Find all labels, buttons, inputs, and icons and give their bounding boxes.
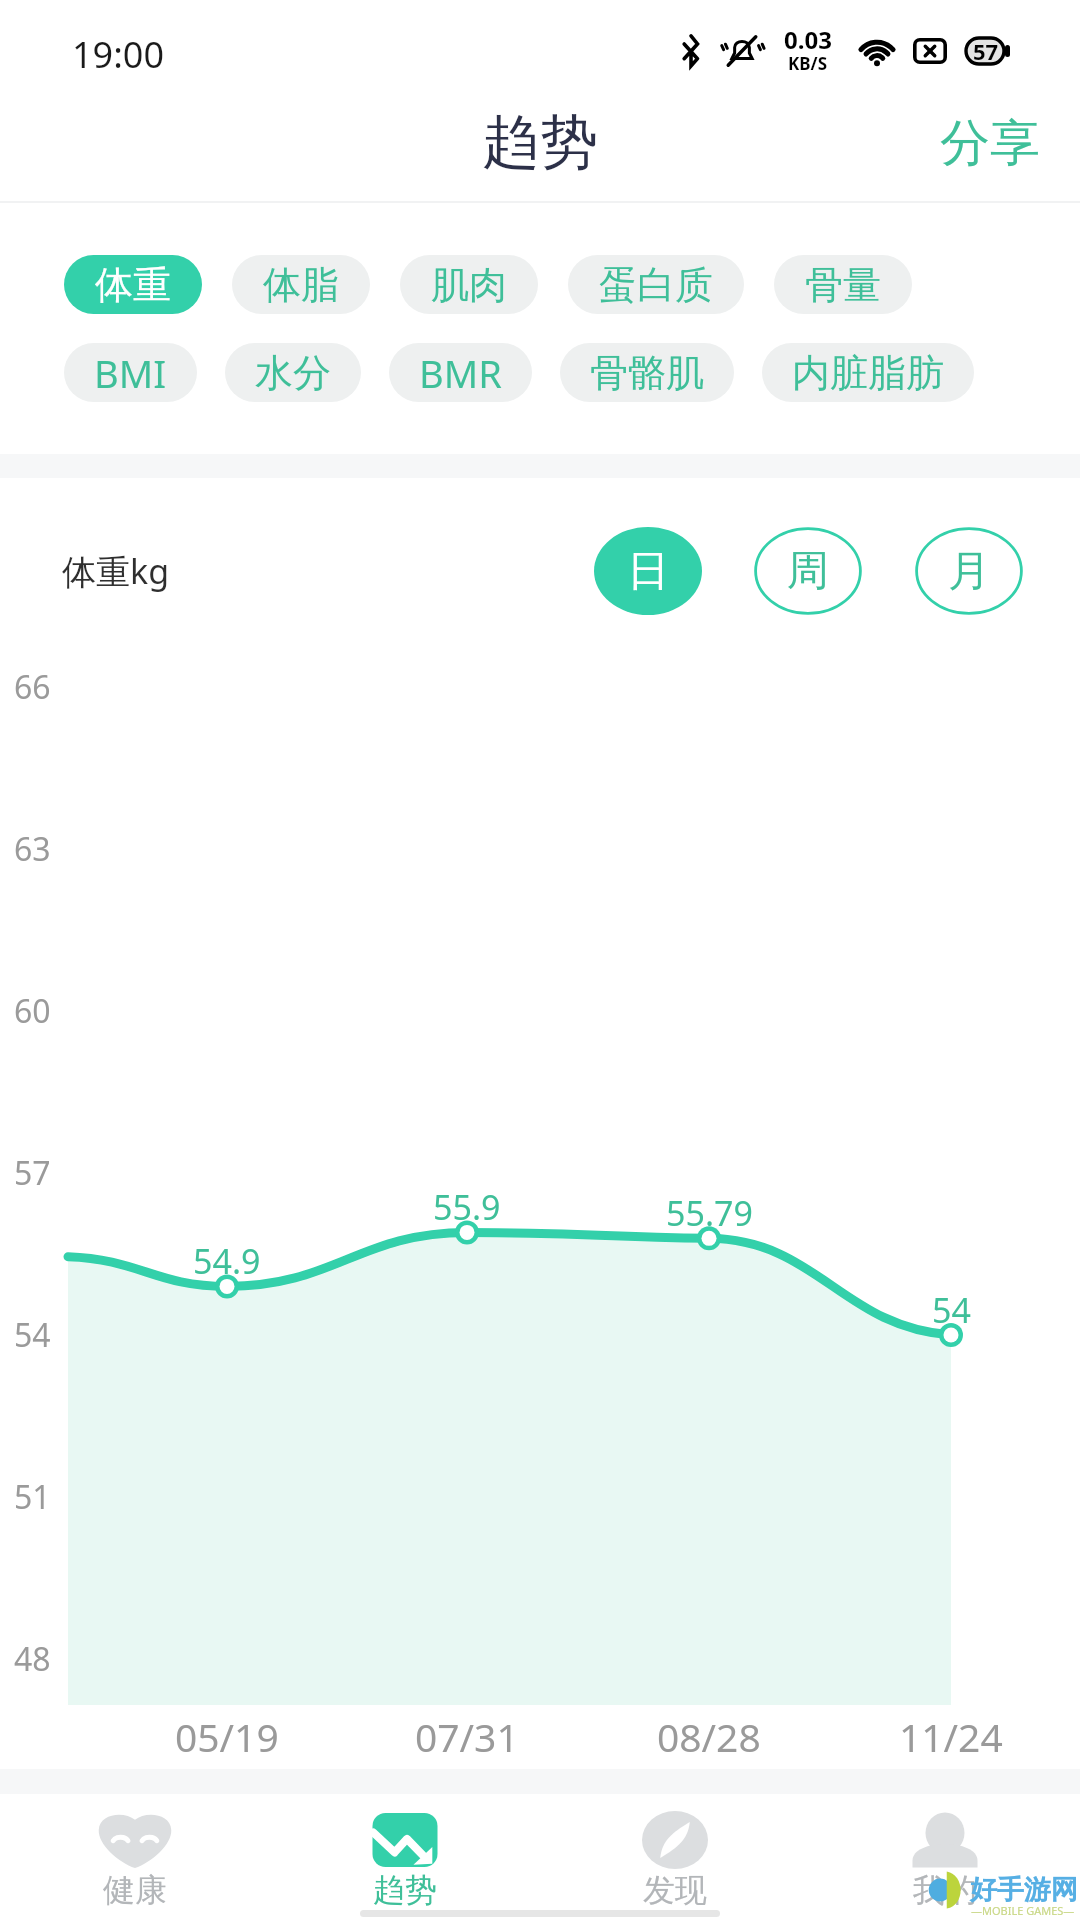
staticText: 54.9: [193, 1238, 261, 1282]
staticText: 55.79: [666, 1190, 753, 1234]
button[interactable]: 水分: [225, 343, 361, 402]
staticText: 骨骼肌: [590, 349, 704, 397]
staticText: 趋势: [373, 1870, 437, 1910]
button[interactable]: 周: [754, 527, 862, 615]
staticText: 周: [787, 545, 829, 598]
staticText: 63: [14, 827, 51, 871]
staticText: 骨量: [805, 261, 881, 309]
button[interactable]: 分享: [904, 96, 1080, 188]
staticText: 57: [14, 1151, 51, 1195]
button[interactable]: 健康: [0, 1794, 270, 1920]
button[interactable]: 蛋白质: [568, 255, 744, 314]
button[interactable]: 骨骼肌: [560, 343, 734, 402]
staticText: —MOBILE GAMES—: [971, 1903, 1075, 1918]
staticText: 08/28: [657, 1710, 761, 1758]
button[interactable]: 发现: [540, 1794, 810, 1920]
button[interactable]: 趋势: [270, 1794, 540, 1920]
button[interactable]: BMR: [389, 343, 532, 402]
staticText: 月: [948, 545, 990, 598]
staticText: 趋势: [482, 106, 598, 179]
staticText: 肌肉: [431, 261, 507, 309]
staticText: 健康: [103, 1870, 167, 1910]
button[interactable]: 肌肉: [400, 255, 538, 314]
staticText: 好手游网: [970, 1873, 1078, 1907]
button[interactable]: 月: [915, 527, 1023, 615]
button[interactable]: 我的: [810, 1794, 1080, 1920]
staticText: 我的: [913, 1870, 977, 1910]
staticText: 48: [14, 1637, 51, 1681]
staticText: KB/S: [788, 52, 828, 75]
staticText: 内脏脂肪: [792, 349, 944, 397]
staticText: 蛋白质: [599, 261, 713, 309]
button[interactable]: 体重: [64, 255, 202, 314]
button[interactable]: 日: [594, 527, 702, 615]
staticText: 54: [932, 1287, 971, 1331]
staticText: BMR: [419, 347, 502, 399]
staticText: 11/24: [899, 1710, 1003, 1758]
staticText: 水分: [255, 349, 331, 397]
staticText: 发现: [643, 1870, 707, 1910]
staticText: 55.9: [433, 1184, 501, 1228]
staticText: BMI: [94, 347, 167, 399]
staticText: 体脂: [263, 261, 339, 309]
button[interactable]: BMI: [64, 343, 197, 402]
staticText: 05/19: [175, 1710, 279, 1758]
staticText: 0.03: [784, 23, 832, 56]
button[interactable]: 骨量: [774, 255, 912, 314]
staticText: 60: [14, 989, 51, 1033]
staticText: 体重: [95, 261, 171, 309]
staticText: 体重kg: [62, 548, 170, 594]
button[interactable]: 体脂: [232, 255, 370, 314]
staticText: 57: [973, 36, 999, 66]
button[interactable]: 内脏脂肪: [762, 343, 974, 402]
staticText: 日: [627, 545, 669, 598]
staticText: 54: [14, 1313, 51, 1357]
staticText: 66: [14, 665, 51, 709]
staticText: 07/31: [415, 1710, 519, 1758]
staticText: 分享: [940, 112, 1040, 172]
staticText: 51: [14, 1475, 51, 1519]
staticText: 19:00: [72, 30, 165, 79]
